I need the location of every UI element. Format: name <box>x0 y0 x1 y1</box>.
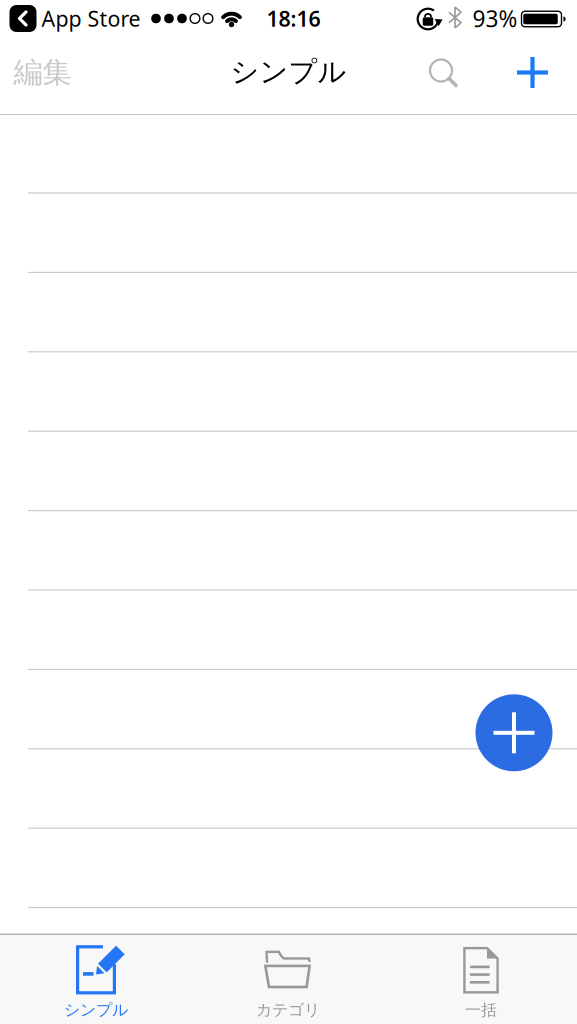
button[interactable]: カテゴリ <box>192 935 385 1024</box>
staticText: 編集 <box>13 54 71 90</box>
button[interactable]: 追加 <box>504 34 560 111</box>
button[interactable]: 新規メモ追加 <box>475 694 552 771</box>
staticText: App Store <box>41 4 140 33</box>
staticText: 一括 <box>465 1000 497 1020</box>
staticText: シンプル <box>64 1000 128 1020</box>
staticText: シンプル <box>230 55 346 89</box>
button[interactable]: App Storeに戻る <box>9 4 140 33</box>
button[interactable]: 一括 <box>385 935 577 1024</box>
button[interactable]: 検索 <box>415 34 471 111</box>
staticText: カテゴリ <box>256 1000 320 1020</box>
button[interactable]: 編集 <box>2 34 82 111</box>
staticText: 93% <box>472 3 517 33</box>
staticText: 18:16 <box>266 4 320 33</box>
button[interactable]: シンプル <box>0 935 192 1024</box>
